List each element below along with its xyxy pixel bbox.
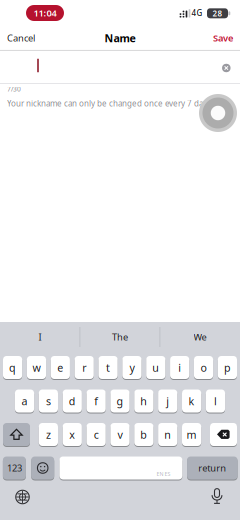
button[interactable]: Space xyxy=(59,456,182,480)
button[interactable]: x xyxy=(63,422,82,446)
staticText: c xyxy=(94,427,99,442)
staticText: 4G xyxy=(191,8,202,18)
staticText: s xyxy=(46,394,51,408)
staticText: f xyxy=(94,394,98,408)
staticText: Cancel xyxy=(7,32,35,44)
staticText: q xyxy=(9,360,16,375)
button[interactable]: i xyxy=(170,355,189,379)
staticText: Save xyxy=(213,32,233,44)
button[interactable]: c xyxy=(86,422,106,446)
button[interactable]: p xyxy=(218,355,237,379)
staticText: I xyxy=(38,331,41,343)
button[interactable]: b xyxy=(134,422,153,446)
button[interactable]: v xyxy=(110,422,130,446)
staticText: b xyxy=(140,427,147,442)
button[interactable]: w xyxy=(27,355,46,379)
button[interactable]: k xyxy=(182,389,201,413)
button[interactable]: The xyxy=(85,325,155,349)
staticText: r xyxy=(82,360,86,375)
button[interactable]: Save xyxy=(213,28,233,48)
staticText: 7/30 xyxy=(7,85,21,93)
staticText: j xyxy=(166,394,169,408)
staticText: l xyxy=(214,394,217,408)
button[interactable]: a xyxy=(15,389,34,413)
button[interactable]: We xyxy=(165,325,235,349)
button[interactable]: q xyxy=(3,355,22,379)
staticText: n xyxy=(164,427,171,442)
staticText: o xyxy=(200,360,206,375)
staticText: 11:04 xyxy=(33,7,56,19)
staticText: i xyxy=(178,360,181,375)
button[interactable]: Emoji xyxy=(31,456,54,480)
button[interactable]: Delete xyxy=(210,422,237,446)
staticText: x xyxy=(69,427,75,442)
staticText: k xyxy=(189,394,195,408)
button[interactable]: f xyxy=(86,389,106,413)
staticText: t xyxy=(106,360,110,375)
button[interactable]: Switch keyboard xyxy=(10,485,34,509)
staticText: m xyxy=(187,427,197,442)
button[interactable]: Cancel xyxy=(7,28,35,48)
staticText: EN ES xyxy=(156,470,170,478)
staticText: 28 xyxy=(212,8,222,19)
button[interactable]: e xyxy=(51,355,70,379)
button[interactable]: t xyxy=(98,355,118,379)
staticText: return xyxy=(198,462,226,474)
staticText: e xyxy=(57,360,63,375)
staticText: z xyxy=(46,427,51,442)
staticText: d xyxy=(69,394,76,408)
staticText: Your nickname can only be changed once e… xyxy=(7,98,213,109)
button[interactable]: d xyxy=(63,389,82,413)
staticText: v xyxy=(117,427,122,442)
button[interactable]: 11:04 xyxy=(26,5,64,21)
staticText: We xyxy=(193,331,206,343)
button[interactable]: j xyxy=(158,389,177,413)
button[interactable]: z xyxy=(39,422,58,446)
button[interactable]: Clear text xyxy=(222,64,231,72)
button[interactable]: Numbers xyxy=(3,456,26,480)
staticText: Name xyxy=(104,31,135,45)
button[interactable]: s xyxy=(39,389,58,413)
button[interactable]: h xyxy=(134,389,153,413)
button[interactable]: o xyxy=(194,355,213,379)
staticText: p xyxy=(224,360,231,375)
button[interactable]: y xyxy=(122,355,141,379)
button[interactable]: AssistiveTouch xyxy=(199,94,237,132)
staticText: u xyxy=(152,360,159,375)
button[interactable]: g xyxy=(110,389,130,413)
staticText: a xyxy=(21,394,27,408)
button[interactable]: n xyxy=(158,422,177,446)
button[interactable]: l xyxy=(206,389,225,413)
button[interactable]: Return xyxy=(187,456,238,480)
button[interactable]: I xyxy=(5,325,75,349)
staticText: y xyxy=(129,360,134,375)
staticText: g xyxy=(116,394,123,408)
button[interactable]: u xyxy=(146,355,165,379)
staticText: w xyxy=(32,360,40,375)
staticText: h xyxy=(140,394,147,408)
staticText: 123 xyxy=(7,462,22,474)
button[interactable]: Shift xyxy=(3,422,30,446)
button[interactable]: m xyxy=(182,422,201,446)
button[interactable]: r xyxy=(75,355,94,379)
button[interactable]: Dictate xyxy=(205,484,229,508)
staticText: The xyxy=(112,331,128,343)
